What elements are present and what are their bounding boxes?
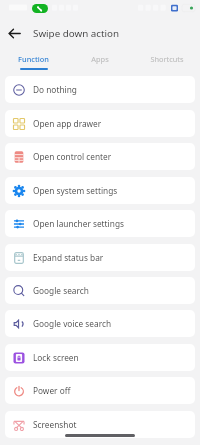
- button[interactable]: Open app drawer: [5, 110, 195, 137]
- button[interactable]: Expand status bar: [5, 244, 195, 271]
- staticText: Open launcher settings: [33, 218, 124, 229]
- staticText: Apps: [91, 54, 109, 64]
- button[interactable]: Google voice search: [5, 310, 195, 337]
- button[interactable]: Back: [4, 23, 25, 44]
- staticText: Expand status bar: [33, 252, 104, 263]
- staticText: Google search: [33, 285, 89, 296]
- button[interactable]: Open launcher settings: [5, 210, 195, 237]
- staticText: Open control center: [33, 151, 112, 162]
- staticText: Power off: [33, 385, 71, 396]
- button[interactable]: Open control center: [5, 143, 195, 170]
- button[interactable]: Screenshot: [5, 411, 195, 438]
- staticText: Lock screen: [33, 352, 79, 363]
- button[interactable]: Function: [0, 50, 66, 76]
- staticText: Do nothing: [33, 84, 77, 95]
- staticText: Open system settings: [33, 185, 118, 196]
- button[interactable]: Open system settings: [5, 177, 195, 204]
- button[interactable]: Apps: [66, 50, 133, 76]
- staticText: Function: [18, 54, 49, 64]
- button[interactable]: Do nothing: [5, 76, 195, 103]
- button[interactable]: Power off: [5, 377, 195, 404]
- staticText: Screenshot: [33, 419, 77, 430]
- button[interactable]: Google search: [5, 277, 195, 304]
- staticText: Swipe down action: [33, 27, 120, 40]
- staticText: Shortcuts: [150, 54, 184, 64]
- staticText: Google voice search: [33, 318, 112, 329]
- button[interactable]: Lock screen: [5, 344, 195, 371]
- button[interactable]: Shortcuts: [133, 50, 200, 76]
- staticText: Open app drawer: [33, 118, 102, 129]
